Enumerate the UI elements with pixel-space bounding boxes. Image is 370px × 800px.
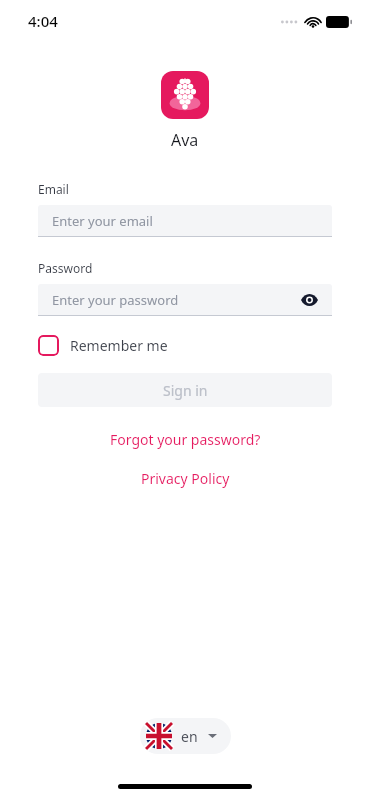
staticText: Password xyxy=(38,260,93,276)
staticText: Remember me xyxy=(70,336,168,355)
button[interactable]: Remember me xyxy=(38,335,332,356)
staticText: Enter your email xyxy=(52,212,153,230)
button[interactable]: Enter your password xyxy=(38,284,332,316)
staticText: Enter your password xyxy=(52,291,179,309)
staticText: en xyxy=(181,727,198,746)
staticText: Email xyxy=(38,181,69,197)
staticText: Sign in xyxy=(163,381,208,400)
button[interactable]: Privacy Policy xyxy=(133,467,238,490)
button[interactable]: Sign in xyxy=(38,373,332,407)
staticText: Forgot your password? xyxy=(110,430,261,449)
button[interactable]: Forgot your password? xyxy=(102,428,269,451)
button[interactable]: Show password xyxy=(298,289,320,311)
staticText: Ava xyxy=(171,129,199,151)
button[interactable]: Ava logo xyxy=(161,71,209,119)
staticText: 4:04 xyxy=(28,11,58,31)
button[interactable]: en xyxy=(140,718,231,754)
button[interactable]: Enter your email xyxy=(38,205,332,237)
staticText: Privacy Policy xyxy=(141,469,230,488)
